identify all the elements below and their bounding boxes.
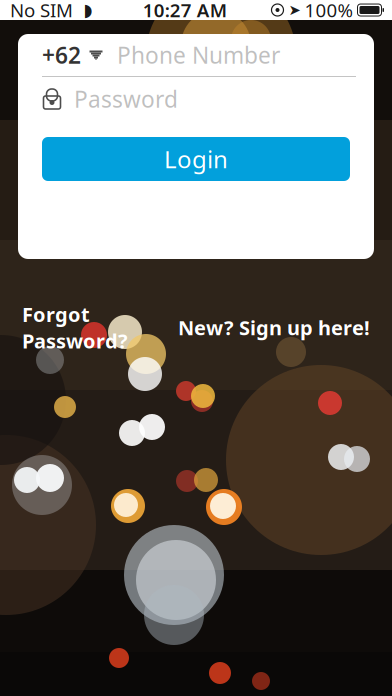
button[interactable]: Forgot Password? [20,295,130,360]
staticText: ➤ [288,2,300,18]
staticText: Password [74,84,178,114]
staticText: Phone Number [117,40,280,70]
staticText: 100% [304,0,353,22]
staticText: No SIM [10,0,73,22]
staticText: Forgot Password? [22,301,128,354]
staticText: 10:27 AM [143,0,227,22]
staticText: New? Sign up here! [178,314,370,341]
button[interactable]: +62 [18,34,374,76]
staticText: +62 [42,40,81,70]
staticText: Login [164,143,228,175]
button[interactable]: Password [18,77,374,121]
button[interactable]: New? Sign up here! [176,308,372,347]
staticText: ◗ [83,0,92,20]
button[interactable]: Login [42,137,350,181]
